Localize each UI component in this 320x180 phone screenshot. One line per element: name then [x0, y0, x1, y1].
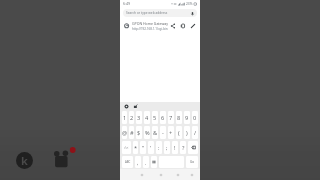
button[interactable]: Backspace — [188, 141, 198, 154]
staticText: , — [137, 159, 139, 166]
staticText: GPON Home Gateway — [132, 21, 169, 26]
button[interactable]: # — [129, 126, 134, 139]
staticText: 9 — [185, 114, 189, 122]
staticText: # — [130, 129, 134, 137]
staticText: 6 — [161, 114, 165, 122]
button[interactable]: 2 — [129, 111, 134, 124]
button[interactable]: Menu — [188, 171, 196, 179]
button[interactable]: Recents — [174, 171, 182, 179]
staticText: + — [169, 129, 173, 137]
staticText: 8 — [177, 114, 181, 122]
button[interactable]: Copy link — [179, 22, 186, 29]
staticText: k — [21, 153, 28, 168]
button[interactable]: - — [160, 126, 166, 139]
staticText: * — [134, 144, 138, 152]
button[interactable]: 5 — [152, 111, 158, 124]
button[interactable]: Notifications — [51, 147, 75, 171]
button[interactable]: Settings — [124, 104, 129, 109]
button[interactable]: Voice search — [190, 11, 195, 16]
button[interactable]: ) — [184, 126, 190, 139]
staticText: =\< — [124, 146, 129, 150]
button[interactable]: Share — [169, 22, 176, 29]
button[interactable]: 4 — [144, 111, 150, 124]
button[interactable]: Edit — [189, 22, 196, 29]
staticText: ( — [178, 129, 180, 137]
button[interactable]: 8 — [176, 111, 182, 124]
button[interactable]: Search or type web address — [123, 9, 197, 17]
button[interactable]: Emoji — [151, 156, 157, 168]
button[interactable]: ? — [180, 141, 186, 154]
button[interactable]: ( — [176, 126, 182, 139]
button[interactable]: @ — [122, 126, 127, 139]
staticText: ? — [182, 144, 185, 152]
button[interactable]: $ — [136, 126, 142, 139]
button[interactable]: ' — [148, 141, 154, 154]
staticText: 23% — [186, 2, 193, 6]
staticText: " — [142, 144, 145, 152]
staticText: 5 — [153, 114, 157, 122]
staticText: % — [145, 129, 150, 137]
staticText: ABC — [125, 160, 131, 164]
button[interactable]: 7 — [168, 111, 174, 124]
button[interactable]: ABC — [122, 156, 133, 168]
staticText: 2 — [130, 114, 134, 122]
staticText: ; — [166, 144, 168, 152]
button[interactable]: Kik — [16, 152, 33, 169]
staticText: 1 — [123, 114, 127, 122]
staticText: ' — [150, 144, 152, 152]
staticText: 0 — [193, 114, 197, 122]
staticText: 4 — [145, 114, 149, 122]
button[interactable]: 6 — [160, 111, 166, 124]
staticText: $ — [137, 129, 141, 137]
button[interactable]: / — [192, 126, 198, 139]
button[interactable]: 0 — [192, 111, 198, 124]
button[interactable]: % — [144, 126, 150, 139]
button[interactable]: Back — [138, 171, 146, 179]
button[interactable]: * — [133, 141, 138, 154]
staticText: ! — [174, 144, 176, 152]
button[interactable]: " — [140, 141, 146, 154]
button[interactable]: ! — [172, 141, 178, 154]
staticText: & — [153, 129, 158, 137]
staticText: http://192.168.1.1/cgi-bin — [132, 27, 168, 31]
button[interactable]: . — [143, 156, 149, 168]
button[interactable]: 3 — [136, 111, 142, 124]
staticText: 3 — [137, 114, 141, 122]
button[interactable]: 9 — [184, 111, 190, 124]
button[interactable]: Go — [186, 156, 198, 168]
button[interactable]: & — [152, 126, 158, 139]
staticText: 6:49 — [123, 1, 131, 6]
button[interactable]: , — [135, 156, 141, 168]
button[interactable]: Home — [157, 171, 165, 179]
button[interactable]: 1 — [122, 111, 127, 124]
staticText: Search or type web address — [126, 11, 168, 15]
button[interactable]: Stickers — [133, 104, 138, 109]
button[interactable]: =\< — [122, 141, 131, 154]
staticText: : — [158, 144, 160, 152]
staticText: @ — [122, 129, 127, 137]
staticText: . — [145, 159, 147, 166]
button[interactable]: GPON Home Gateway — [120, 19, 200, 31]
staticText: / — [194, 129, 197, 137]
staticText: - — [162, 129, 164, 137]
button[interactable]: : — [156, 141, 162, 154]
staticText: Go — [190, 160, 195, 164]
staticText: 7 — [169, 114, 173, 122]
button[interactable]: ; — [164, 141, 170, 154]
button[interactable]: + — [168, 126, 174, 139]
staticText: ) — [186, 129, 188, 137]
